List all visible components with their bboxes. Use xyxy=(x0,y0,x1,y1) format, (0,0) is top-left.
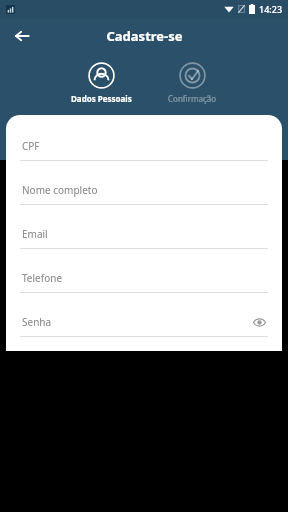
button[interactable]: Telefone xyxy=(15,263,273,307)
staticText: 14:23 xyxy=(259,3,283,15)
staticText: Dados Pessoais xyxy=(71,93,132,104)
button[interactable]: Email xyxy=(15,219,273,263)
staticText: Confirmação xyxy=(168,93,217,104)
staticText: CPF xyxy=(22,139,40,153)
button[interactable]: Nome completo xyxy=(15,175,273,219)
staticText: Nome completo xyxy=(22,183,98,197)
button[interactable]: Dados Pessoais step xyxy=(67,60,136,106)
button[interactable]: Confirmação step xyxy=(164,60,221,106)
button[interactable]: Senha xyxy=(15,307,273,351)
staticText: Cadastre-se xyxy=(106,27,183,45)
staticText: Telefone xyxy=(22,271,63,285)
button[interactable]: Back xyxy=(8,22,36,50)
staticText: Email xyxy=(22,227,48,241)
button[interactable]: Show password xyxy=(249,312,269,332)
staticText: Senha xyxy=(22,315,52,329)
button[interactable]: CPF xyxy=(15,131,273,175)
